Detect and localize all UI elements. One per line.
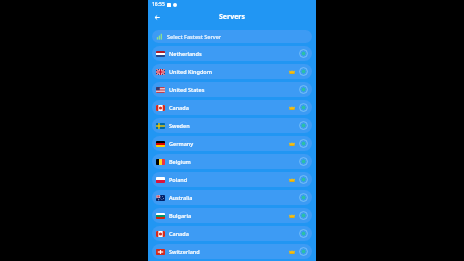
button[interactable]: Switzerland [152,244,312,259]
button[interactable]: Select server [299,211,308,220]
button[interactable]: United Kingdom [152,64,312,79]
button[interactable]: Poland [152,172,312,187]
button[interactable]: Select server [299,67,308,76]
button[interactable]: Germany [152,136,312,151]
button[interactable]: Select server [299,175,308,184]
button[interactable]: Select server [299,157,308,166]
button[interactable]: Select server [299,247,308,256]
staticText: United Kingdom [169,68,289,75]
button[interactable]: Belgium [152,154,312,169]
staticText: Servers [219,12,245,22]
button[interactable]: Canada [152,100,312,115]
button[interactable]: Netherlands [152,46,312,61]
button[interactable]: Select server [299,103,308,112]
button[interactable]: Sweden [152,118,312,133]
button[interactable]: Select server [299,229,308,238]
staticText: Poland [169,176,289,183]
button[interactable]: Bulgaria [152,208,312,223]
button[interactable]: Select server [299,49,308,58]
button[interactable]: Select server [299,121,308,130]
button[interactable]: Select Fastest Server [152,30,312,43]
button[interactable]: Back [151,11,163,23]
button[interactable]: United States [152,82,312,97]
staticText: Select Fastest Server [167,33,222,40]
staticText: Canada [169,104,289,111]
button[interactable]: Canada [152,226,312,241]
staticText: Germany [169,140,289,147]
staticText: Belgium [169,158,299,165]
staticText: Australia [169,194,299,201]
staticText: Netherlands [169,50,299,57]
staticText: Bulgaria [169,212,289,219]
staticText: Canada [169,230,299,237]
staticText: Switzerland [169,248,289,255]
staticText: Sweden [169,122,299,129]
staticText: 16:55 [152,1,165,8]
button[interactable]: Select server [299,85,308,94]
button[interactable]: Select server [299,139,308,148]
staticText: United States [169,86,299,93]
button[interactable]: Select server [299,193,308,202]
button[interactable]: Australia [152,190,312,205]
